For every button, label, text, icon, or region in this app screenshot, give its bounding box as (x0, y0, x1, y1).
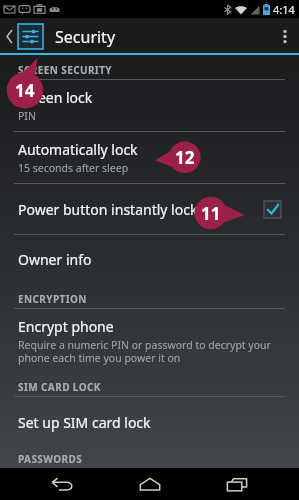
staticText: SCREEN SECURITY (18, 63, 112, 77)
button[interactable]: Back (36, 468, 88, 500)
staticText: ENCRYPTION (18, 292, 87, 306)
staticText: SIM CARD LOCK (18, 380, 101, 394)
button[interactable]: Home (124, 468, 176, 500)
staticText: PASSWORDS (18, 452, 83, 466)
staticText: 12 (175, 146, 195, 168)
staticText: Owner info (18, 250, 92, 269)
staticText: 14 (15, 79, 35, 101)
staticText: PIN (18, 109, 36, 123)
button[interactable]: Set up SIM card lock (0, 397, 299, 447)
button[interactable]: Owner info (0, 235, 299, 284)
button[interactable]: Recent apps (211, 468, 263, 500)
staticText: Security (55, 26, 116, 48)
staticText: Screen lock (18, 88, 93, 107)
button[interactable]: Encrypt phone (0, 309, 299, 372)
staticText: 4:14 (273, 2, 295, 17)
button[interactable]: Screen lock (0, 80, 299, 131)
staticText: Encrypt phone (18, 317, 114, 336)
staticText: Power button instantly locks (18, 200, 205, 219)
staticText: 15 seconds after sleep (18, 161, 129, 175)
staticText: 11 (201, 202, 221, 224)
button[interactable]: Power button instantly locks (0, 184, 299, 234)
staticText: Automatically lock (18, 140, 138, 159)
staticText: Require a numeric PIN or password to dec… (18, 338, 271, 365)
staticText: Set up SIM card lock (18, 413, 151, 432)
button[interactable]: Navigate up (0, 18, 49, 55)
button[interactable]: Automatically lock (0, 132, 299, 183)
button[interactable]: More options (271, 18, 299, 55)
